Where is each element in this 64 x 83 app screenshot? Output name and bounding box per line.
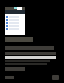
button[interactable]: Action xyxy=(52,75,59,80)
